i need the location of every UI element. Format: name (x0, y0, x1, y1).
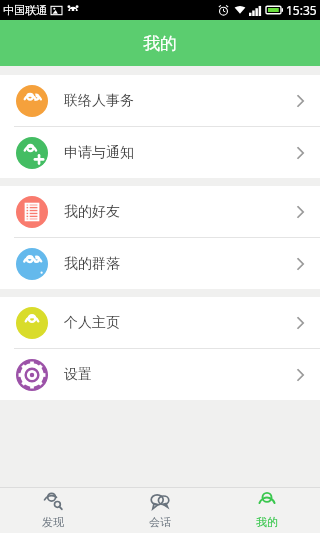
staticText: 我的群落 (64, 255, 120, 273)
staticText: 联络人事务 (64, 92, 134, 110)
staticText: 我的 (143, 33, 177, 54)
staticText: 申请与通知 (64, 144, 134, 162)
staticText: 个人主页 (64, 314, 120, 332)
button[interactable]: 发现 (0, 487, 106, 533)
staticText: 设置 (64, 366, 92, 384)
button[interactable]: 会话 (106, 487, 213, 533)
button[interactable]: 个人主页 (0, 297, 320, 348)
staticText: 中国联通 (3, 3, 47, 17)
staticText: 15:35 (286, 2, 317, 18)
staticText: 我的 (256, 515, 278, 529)
button[interactable]: 申请与通知 (0, 127, 320, 178)
button[interactable]: 设置 (0, 349, 320, 400)
staticText: 发现 (42, 515, 64, 529)
staticText: 会话 (149, 515, 171, 529)
button[interactable]: 我的好友 (0, 186, 320, 237)
button[interactable]: 联络人事务 (0, 75, 320, 126)
button[interactable]: 我的群落 (0, 238, 320, 289)
staticText: 我的好友 (64, 203, 120, 221)
button[interactable]: 我的 (213, 487, 320, 533)
